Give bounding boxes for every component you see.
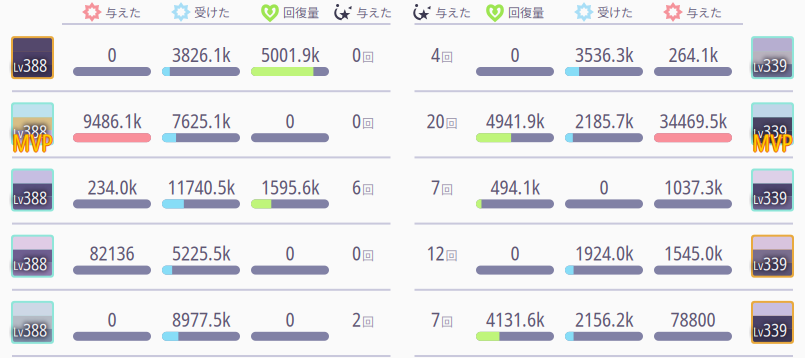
staticText: 7625.1k	[172, 107, 230, 134]
staticText: 0	[285, 107, 294, 134]
staticText: 回	[445, 246, 457, 264]
staticText: MVP	[13, 127, 53, 158]
staticText: 0	[107, 306, 116, 332]
staticText: 2	[352, 306, 361, 332]
staticText: 0	[285, 306, 294, 332]
staticText: 1545.0k	[664, 240, 722, 266]
staticText: 339	[763, 252, 787, 276]
staticText: Lv	[13, 257, 23, 274]
staticText: 3826.1k	[172, 41, 230, 68]
staticText: 0	[352, 41, 361, 68]
staticText: 339	[763, 53, 787, 77]
staticText: 34469.5k	[659, 107, 726, 134]
staticText: MVP	[12, 127, 52, 158]
staticText: 12	[426, 240, 444, 266]
staticText: 回	[362, 114, 374, 131]
staticText: 388	[23, 53, 47, 77]
button[interactable]: 与えた	[413, 3, 471, 21]
staticText: 0	[107, 41, 116, 68]
staticText: Lv	[753, 191, 763, 208]
staticText: 与えた	[105, 3, 141, 21]
staticText: 339	[763, 318, 787, 342]
staticText: MVP	[11, 127, 51, 158]
staticText: MVP	[752, 127, 792, 158]
staticText: MVP	[752, 128, 792, 159]
staticText: MVP	[753, 127, 793, 158]
staticText: 8977.5k	[172, 306, 230, 332]
button[interactable]: 与えた	[664, 3, 722, 21]
button[interactable]: 回復量	[486, 3, 544, 21]
staticText: 494.1k	[490, 174, 539, 200]
staticText: 0	[510, 240, 519, 266]
staticText: 回復量	[508, 3, 544, 21]
staticText: 回	[362, 48, 374, 65]
staticText: 6	[352, 174, 361, 200]
staticText: 0	[285, 240, 294, 266]
staticText: MVP	[12, 128, 52, 159]
staticText: 388	[23, 252, 47, 276]
staticText: Lv	[753, 124, 763, 142]
staticText: 0	[352, 107, 361, 134]
staticText: 4131.6k	[486, 306, 544, 332]
staticText: 11740.5k	[167, 174, 234, 200]
staticText: Lv	[13, 124, 23, 142]
staticText: 1037.3k	[664, 174, 722, 200]
staticText: 5001.9k	[261, 41, 319, 68]
staticText: 388	[23, 120, 47, 143]
button[interactable]: 受けた	[575, 3, 633, 21]
staticText: 1595.6k	[261, 174, 319, 200]
staticText: 回	[445, 114, 457, 131]
staticText: 回	[441, 313, 453, 330]
staticText: 0	[352, 240, 361, 266]
staticText: 4	[431, 41, 440, 68]
staticText: 2156.2k	[575, 306, 633, 332]
button[interactable]: 回復量	[261, 3, 319, 21]
staticText: Lv	[753, 323, 763, 340]
staticText: Lv	[753, 257, 763, 274]
staticText: 与えた	[435, 3, 471, 21]
button[interactable]: 受けた	[172, 3, 230, 21]
button[interactable]: 与えた	[334, 3, 392, 21]
staticText: 82136	[89, 240, 134, 266]
staticText: 受けた	[194, 3, 230, 21]
staticText: 388	[23, 318, 47, 342]
staticText: 339	[763, 120, 787, 143]
staticText: Lv	[753, 58, 763, 75]
staticText: 回	[441, 48, 453, 65]
staticText: 5225.5k	[172, 240, 230, 266]
staticText: 0	[510, 41, 519, 68]
staticText: 264.1k	[668, 41, 717, 68]
staticText: 3536.3k	[575, 41, 633, 68]
staticText: 20	[426, 107, 444, 134]
staticText: 受けた	[597, 3, 633, 21]
staticText: 与えた	[356, 3, 392, 21]
staticText: 与えた	[686, 3, 722, 21]
staticText: Lv	[13, 191, 23, 208]
staticText: 回	[362, 180, 374, 198]
staticText: 1924.0k	[575, 240, 633, 266]
staticText: 7	[431, 306, 440, 332]
staticText: 9486.1k	[83, 107, 141, 134]
staticText: 234.0k	[87, 174, 136, 200]
staticText: 4941.9k	[486, 107, 544, 134]
staticText: 7	[431, 174, 440, 200]
staticText: Lv	[13, 323, 23, 340]
staticText: 0	[599, 174, 608, 200]
staticText: 2185.7k	[575, 107, 633, 134]
staticText: 回	[441, 180, 453, 198]
staticText: MVP	[751, 127, 791, 158]
staticText: 回復量	[283, 3, 319, 21]
staticText: 339	[763, 186, 787, 209]
staticText: 回	[362, 313, 374, 330]
staticText: Lv	[13, 58, 23, 75]
staticText: 78800	[670, 306, 715, 332]
staticText: 回	[362, 246, 374, 264]
button[interactable]: 与えた	[83, 3, 141, 21]
staticText: 388	[23, 186, 47, 209]
